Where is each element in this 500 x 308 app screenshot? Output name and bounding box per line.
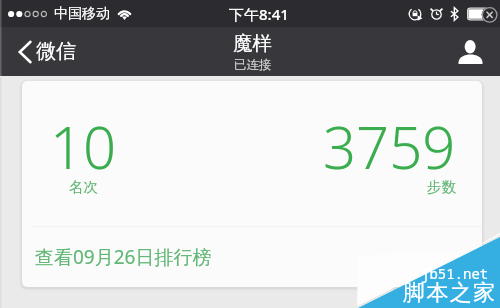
- staticText: 下午8:41: [229, 4, 289, 24]
- staticText: 3759: [323, 107, 456, 186]
- staticText: 名次: [69, 178, 98, 196]
- staticText: 脚本之家: [403, 279, 497, 307]
- staticText: jb51.net: [421, 264, 489, 283]
- button[interactable]: Profile: [452, 34, 488, 70]
- staticText: 步数: [427, 178, 456, 196]
- staticText: 魔样: [233, 31, 272, 56]
- staticText: 中国移动: [54, 5, 110, 23]
- button[interactable]: 查看09月26日排行榜: [22, 227, 482, 287]
- staticText: 微信: [36, 39, 76, 64]
- button[interactable]: 微信: [18, 32, 80, 71]
- staticText: 查看09月26日排行榜: [35, 244, 212, 270]
- staticText: 10: [50, 107, 117, 186]
- staticText: 已连接: [234, 57, 272, 73]
